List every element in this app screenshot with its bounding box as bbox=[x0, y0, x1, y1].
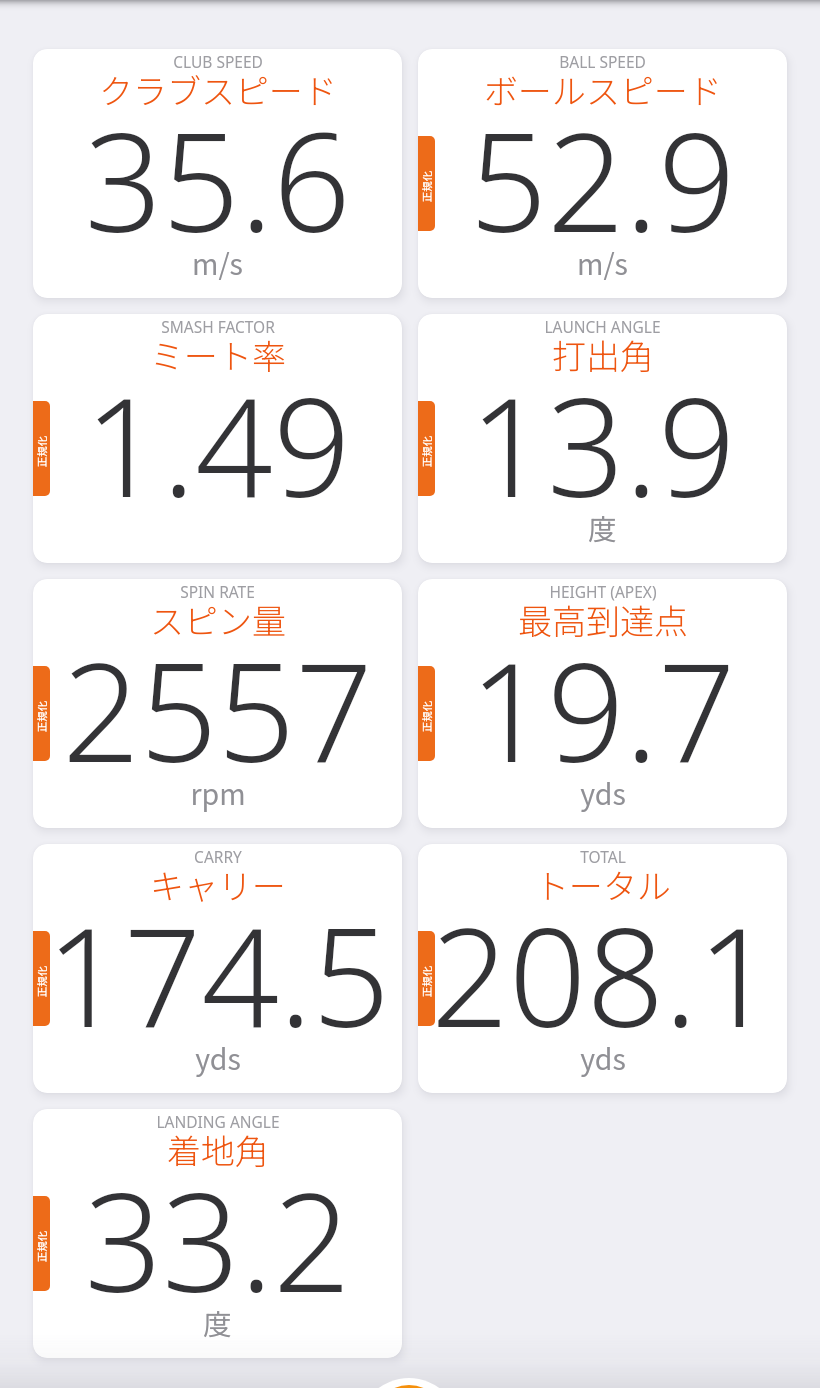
staticText: 正規化 bbox=[34, 934, 49, 1026]
button[interactable]: 正規化 bbox=[33, 401, 50, 496]
button[interactable]: SPIN RATE bbox=[33, 579, 402, 828]
staticText: 正規化 bbox=[34, 404, 49, 496]
button[interactable]: LANDING ANGLE bbox=[33, 1109, 402, 1358]
staticText: 1.49 bbox=[84, 352, 351, 537]
button[interactable]: LAUNCH ANGLE bbox=[418, 314, 787, 563]
staticText: 度 bbox=[203, 1302, 232, 1343]
staticText: 正規化 bbox=[34, 669, 49, 761]
staticText: クラブスピード bbox=[99, 65, 337, 114]
staticText: m/s bbox=[192, 242, 243, 283]
staticText: 35.6 bbox=[84, 87, 351, 272]
staticText: 度 bbox=[588, 507, 617, 548]
staticText: 208.1 bbox=[431, 882, 775, 1067]
staticText: yds bbox=[580, 1037, 626, 1078]
staticText: 正規化 bbox=[419, 404, 434, 496]
staticText: CARRY bbox=[194, 846, 242, 867]
staticText: TOTAL bbox=[580, 846, 626, 867]
button[interactable]: HEIGHT (APEX) bbox=[418, 579, 787, 828]
staticText: rpm bbox=[190, 772, 246, 813]
button[interactable]: 正規化 bbox=[418, 401, 435, 496]
staticText: キャリー bbox=[150, 860, 286, 909]
staticText: 19.7 bbox=[469, 617, 736, 802]
button[interactable]: 正規化 bbox=[33, 1196, 50, 1291]
staticText: 174.5 bbox=[46, 882, 390, 1067]
staticText: 正規化 bbox=[419, 139, 434, 231]
staticText: 着地角 bbox=[167, 1125, 269, 1174]
staticText: yds bbox=[195, 1037, 241, 1078]
staticText: LANDING ANGLE bbox=[156, 1111, 280, 1132]
button[interactable]: 正規化 bbox=[33, 666, 50, 761]
staticText: yds bbox=[580, 772, 626, 813]
staticText: LAUNCH ANGLE bbox=[544, 316, 661, 337]
staticText: 2557 bbox=[62, 617, 373, 802]
button[interactable]: CARRY bbox=[33, 844, 402, 1093]
staticText: HEIGHT (APEX) bbox=[549, 581, 657, 602]
staticText: SPIN RATE bbox=[180, 581, 255, 602]
button[interactable]: SMASH FACTOR bbox=[33, 314, 402, 563]
staticText: トータル bbox=[535, 860, 671, 909]
button[interactable]: 正規化 bbox=[418, 136, 435, 231]
staticText: 正規化 bbox=[419, 669, 434, 761]
button[interactable]: 正規化 bbox=[418, 931, 435, 1026]
button[interactable]: TOTAL bbox=[418, 844, 787, 1093]
button[interactable]: CLUB SPEED bbox=[33, 49, 402, 298]
button[interactable]: 正規化 bbox=[418, 666, 435, 761]
staticText: BALL SPEED bbox=[559, 51, 646, 72]
staticText: SMASH FACTOR bbox=[161, 316, 275, 337]
button[interactable]: Record shot bbox=[358, 1378, 460, 1388]
staticText: ボールスピード bbox=[484, 65, 722, 114]
staticText: 33.2 bbox=[84, 1147, 351, 1332]
staticText: 正規化 bbox=[34, 1199, 49, 1291]
staticText: 最高到達点 bbox=[518, 595, 688, 644]
staticText: 13.9 bbox=[469, 352, 736, 537]
staticText: 打出角 bbox=[552, 330, 654, 379]
button[interactable]: BALL SPEED bbox=[418, 49, 787, 298]
staticText: ミート率 bbox=[150, 330, 286, 379]
staticText: CLUB SPEED bbox=[173, 51, 263, 72]
staticText: スピン量 bbox=[150, 595, 286, 644]
button[interactable]: 正規化 bbox=[33, 931, 50, 1026]
staticText: 正規化 bbox=[419, 934, 434, 1026]
staticText: 52.9 bbox=[469, 87, 736, 272]
staticText: m/s bbox=[577, 242, 628, 283]
